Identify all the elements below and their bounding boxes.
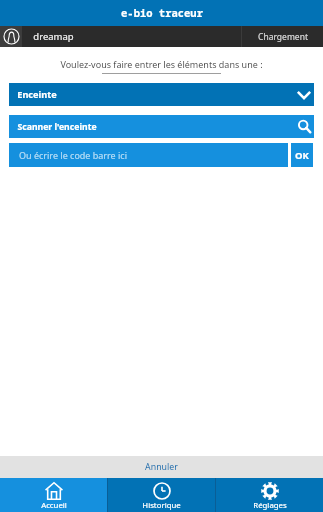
other: Account bbox=[3, 28, 20, 45]
other: Search bbox=[298, 120, 311, 133]
staticText: dreamap bbox=[33, 30, 74, 43]
staticText: Accueil bbox=[41, 500, 67, 511]
button[interactable]: Chargement bbox=[242, 26, 323, 47]
staticText: Réglages bbox=[253, 500, 287, 511]
staticText: Annuler bbox=[145, 461, 178, 473]
button[interactable]: Enceinte bbox=[9, 83, 314, 106]
button[interactable]: Scanner l'enceinte bbox=[9, 115, 314, 138]
button[interactable]: Accueil bbox=[0, 478, 107, 512]
staticText: Scanner l'enceinte bbox=[17, 121, 97, 133]
staticText: Voulez-vous faire entrer les éléments da… bbox=[60, 58, 263, 70]
staticText: Chargement bbox=[258, 31, 308, 43]
button[interactable]: Account bbox=[0, 26, 84, 47]
button[interactable]: Historique bbox=[108, 478, 215, 512]
other: Accueil bbox=[45, 482, 63, 500]
button[interactable]: OK bbox=[291, 143, 313, 167]
staticText: e-bio traceur bbox=[121, 6, 203, 20]
staticText: OK bbox=[295, 149, 309, 162]
other: Open dropdown bbox=[297, 88, 311, 102]
button[interactable]: Ou écrire le code barre ici bbox=[9, 143, 288, 167]
button[interactable]: Réglages bbox=[216, 478, 323, 512]
other: Réglages bbox=[261, 482, 279, 500]
staticText: Enceinte bbox=[17, 88, 57, 101]
button[interactable]: Annuler bbox=[0, 456, 323, 478]
staticText: Historique bbox=[142, 500, 181, 511]
other: Historique bbox=[153, 482, 171, 500]
staticText: Ou écrire le code barre ici bbox=[19, 149, 127, 161]
